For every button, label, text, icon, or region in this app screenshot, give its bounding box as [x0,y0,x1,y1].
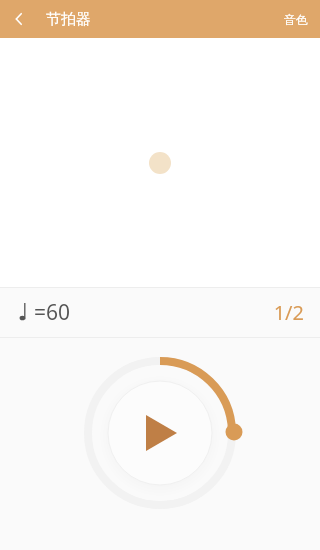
staticText: 1/2 [273,299,304,326]
button[interactable]: 音色 [272,0,320,38]
staticText: =60 [34,298,71,327]
button[interactable]: Play [76,349,244,517]
button[interactable]: =60 [0,288,320,337]
staticText: 节拍器 [46,10,91,29]
button[interactable]: Back [0,0,38,38]
staticText: 音色 [284,12,308,27]
